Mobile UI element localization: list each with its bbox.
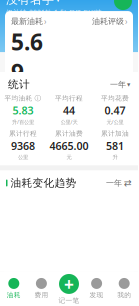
staticText: 累计行程 <box>9 129 37 138</box>
button[interactable]: 费用 <box>28 271 55 305</box>
button[interactable]: 一年 <box>110 80 130 89</box>
staticText: 44 <box>63 103 75 117</box>
staticText: ▾ <box>127 81 130 88</box>
staticText: 一年 <box>106 178 122 188</box>
staticText: 升/百公里 <box>12 118 34 126</box>
staticText: 5.69 <box>11 27 43 87</box>
staticText: 0.47 <box>104 103 125 117</box>
staticText: 累计油费 <box>55 129 83 138</box>
staticText: 平均花费 <box>101 94 129 102</box>
staticText: ▾ <box>56 0 60 4</box>
staticText: 581 <box>106 139 124 153</box>
staticText: 费用 <box>34 291 48 299</box>
button[interactable]: 我的 <box>110 271 138 305</box>
staticText: D <box>116 78 121 87</box>
button[interactable]: 最新油耗 <box>11 16 46 27</box>
button[interactable]: 油耗 <box>0 271 28 305</box>
button[interactable]: 发现 <box>83 271 110 305</box>
staticText: 油耗评级 <box>92 16 124 26</box>
staticText: E <box>123 78 127 87</box>
staticText: C <box>110 78 114 87</box>
button[interactable]: 一年 <box>106 178 132 188</box>
staticText: 没有名字 <box>6 0 54 7</box>
staticText: 最新油耗 <box>11 16 43 26</box>
staticText: + <box>64 272 74 295</box>
staticText: 4665.00 <box>49 139 88 153</box>
staticText: 升 <box>112 154 117 160</box>
button[interactable]: 油耗评级 <box>92 16 127 27</box>
staticText: 伊兰特 2021款 1.5L CVT GLX精英版 <box>6 8 102 25</box>
staticText: 元/公里 <box>106 118 123 126</box>
button[interactable]: 没有名字 <box>6 0 60 7</box>
staticText: › <box>44 16 46 27</box>
staticText: 统计 <box>8 78 30 91</box>
staticText: 5.83 <box>12 103 33 117</box>
staticText: 公里/天 <box>60 118 77 126</box>
button[interactable]: + <box>55 271 83 305</box>
staticText: 油耗 <box>7 291 21 299</box>
staticText: ⇄ <box>124 178 132 188</box>
staticText: 累计加油 <box>101 129 129 138</box>
staticText: 公里 <box>18 154 28 160</box>
staticText: 平均油耗 ⓘ <box>4 94 41 102</box>
staticText: 元 <box>66 154 71 160</box>
staticText: 我的 <box>117 291 131 299</box>
staticText: 一年 <box>110 80 126 89</box>
staticText: 9368 <box>11 139 35 153</box>
staticText: › <box>125 16 127 27</box>
staticText: 发现 <box>90 291 104 299</box>
staticText: 记一笔 <box>58 296 79 305</box>
staticText: 油耗变化趋势 <box>7 176 76 189</box>
staticText: 平均行程 <box>55 94 83 102</box>
